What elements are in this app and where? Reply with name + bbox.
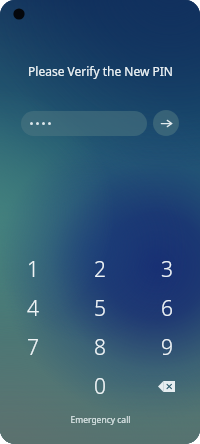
staticText: 4: [27, 294, 39, 323]
button[interactable]: 9: [133, 328, 200, 367]
button[interactable]: 0: [66, 367, 133, 406]
staticText: Emergency call: [70, 414, 131, 426]
button[interactable]: 8: [66, 328, 133, 367]
button[interactable]: 4: [0, 289, 66, 328]
staticText: 7: [27, 333, 39, 362]
staticText: 6: [161, 294, 173, 323]
staticText: 8: [94, 333, 106, 362]
button[interactable]: Submit PIN: [153, 110, 179, 136]
button[interactable]: 5: [66, 289, 133, 328]
staticText: Please Verify the New PIN: [28, 63, 173, 79]
button[interactable]: Backspace: [133, 367, 200, 406]
button[interactable]: [21, 111, 147, 136]
staticText: 1: [27, 255, 39, 284]
staticText: 0: [94, 372, 106, 401]
staticText: 9: [161, 333, 173, 362]
button[interactable]: 2: [66, 250, 133, 289]
staticText: 2: [94, 255, 106, 284]
button[interactable]: 7: [0, 328, 66, 367]
button[interactable]: 6: [133, 289, 200, 328]
button[interactable]: 1: [0, 250, 66, 289]
button[interactable]: 3: [133, 250, 200, 289]
staticText: 3: [161, 255, 173, 284]
staticText: 5: [94, 294, 106, 323]
button[interactable]: Emergency call: [60, 410, 141, 430]
